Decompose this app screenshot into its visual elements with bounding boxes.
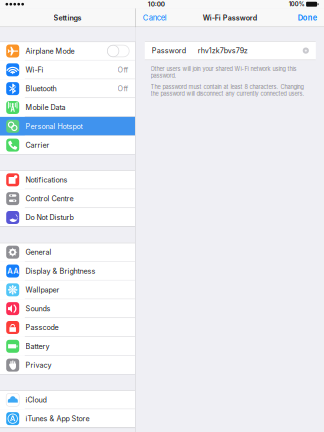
staticText: Off <box>118 65 129 74</box>
staticText: rhv1zk7bvs79z <box>198 46 248 55</box>
staticText: Privacy <box>25 361 51 369</box>
button[interactable]: Bluetooth <box>0 79 135 98</box>
staticText: 100% <box>289 1 305 8</box>
staticText: iCloud <box>25 395 46 404</box>
staticText: AA <box>7 266 18 275</box>
button[interactable]: Do Not Disturb <box>0 208 135 227</box>
staticText: Wallpaper <box>25 285 59 294</box>
button[interactable]: iTunes & App Store <box>0 409 135 428</box>
staticText: iTunes & App Store <box>25 414 89 423</box>
button[interactable]: Wallpaper <box>0 280 135 299</box>
button[interactable]: Notifications <box>0 170 135 189</box>
button[interactable]: AA <box>0 262 135 280</box>
staticText: Settings <box>53 13 81 22</box>
button[interactable]: Mobile Data <box>0 98 135 117</box>
button[interactable]: Battery <box>0 337 135 356</box>
staticText: Battery <box>25 342 49 351</box>
staticText: Carrier <box>25 141 49 149</box>
staticText: Cancel <box>143 13 167 22</box>
staticText: Display & Brightness <box>25 267 95 275</box>
staticText: Other users will join your shared Wi-Fi … <box>150 65 296 79</box>
button[interactable]: Sounds <box>0 299 135 318</box>
button[interactable]: Privacy <box>0 356 135 374</box>
button[interactable]: Wi-Fi <box>0 60 135 79</box>
button[interactable]: Personal Hotspot <box>0 117 135 136</box>
staticText: 10:00 <box>148 0 165 8</box>
button[interactable]: Airplane Mode <box>0 42 135 60</box>
staticText: The password must contain at least 8 cha… <box>150 84 304 97</box>
staticText: Password <box>152 46 186 55</box>
staticText: Wi-Fi Password <box>203 13 257 22</box>
button[interactable]: Control Centre <box>0 189 135 208</box>
staticText: Notifications <box>25 175 67 184</box>
staticText: General <box>25 248 51 256</box>
button[interactable]: iCloud <box>0 390 135 409</box>
staticText: Sounds <box>25 304 50 313</box>
staticText: Personal Hotspot <box>25 122 82 131</box>
staticText: Off <box>118 84 129 93</box>
staticText: Mobile Data <box>25 103 65 112</box>
staticText: Control Centre <box>25 194 73 203</box>
button[interactable]: Done <box>298 8 324 27</box>
button[interactable]: Clear text <box>301 46 311 56</box>
button[interactable]: Passcode <box>0 318 135 337</box>
button[interactable]: Cancel <box>135 8 167 27</box>
button[interactable]: Carrier <box>0 136 135 154</box>
staticText: Passcode <box>25 323 58 332</box>
staticText: Done <box>298 13 317 22</box>
staticText: Do Not Disturb <box>25 213 73 222</box>
button[interactable]: General <box>0 243 135 262</box>
staticText: Airplane Mode <box>25 47 74 55</box>
staticText: Wi-Fi <box>25 65 43 74</box>
staticText: Bluetooth <box>25 84 56 93</box>
